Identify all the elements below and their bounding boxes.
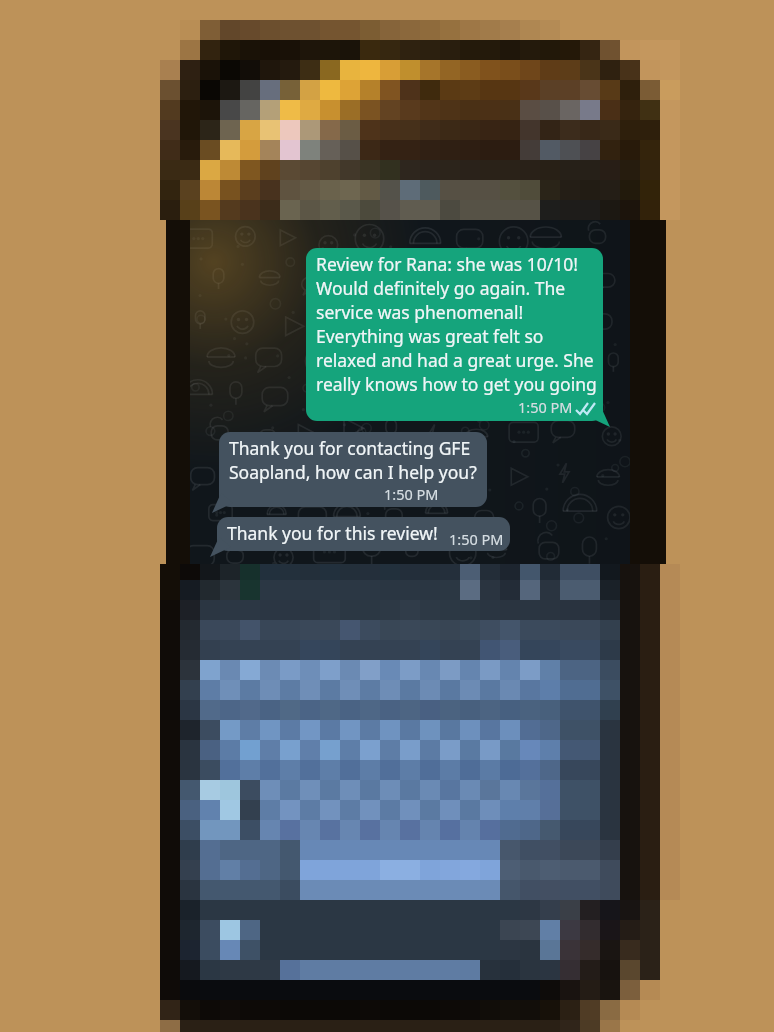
- staticText: 1:50 PM: [384, 484, 439, 504]
- staticText: Thank you for this review!: [227, 521, 438, 545]
- staticText: Review for Rana: she was 10/10! Would de…: [316, 252, 597, 396]
- staticText: 1:50 PM: [449, 529, 504, 549]
- button[interactable]: WhatsApp chat conversation: [0, 0, 774, 1032]
- staticText: Thank you for contacting GFE Soapland, h…: [229, 436, 477, 484]
- staticText: 1:50 PM: [518, 397, 573, 417]
